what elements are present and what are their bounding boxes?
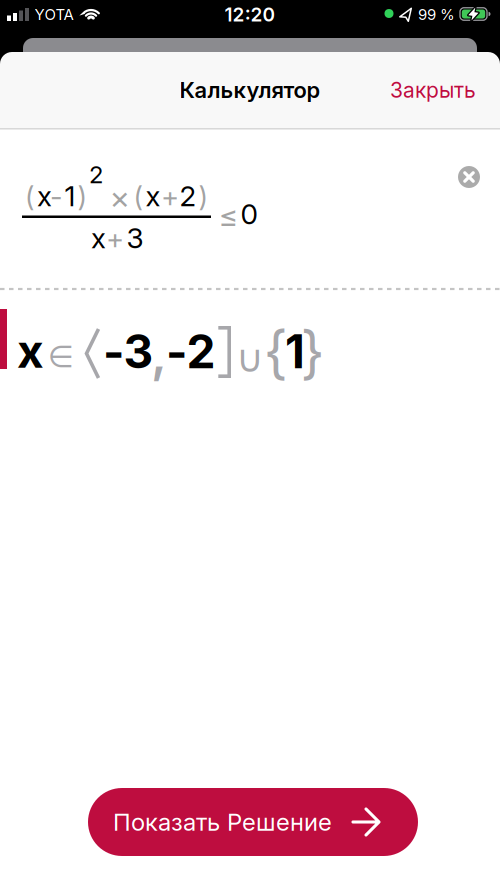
staticText: - <box>103 324 125 380</box>
staticText: 2 <box>179 179 196 213</box>
staticText: } <box>300 317 324 386</box>
button[interactable]: Закрыть <box>390 77 476 103</box>
staticText: { <box>263 317 287 386</box>
staticText: Калькулятор <box>179 77 320 103</box>
staticText: 99 % <box>418 5 455 23</box>
staticText: - <box>50 179 63 213</box>
staticText: YOTA <box>34 5 73 23</box>
staticText: ) <box>77 179 86 213</box>
staticText: ∈ <box>47 339 73 374</box>
staticText: 2 <box>186 324 215 379</box>
staticText: 0 <box>240 197 257 231</box>
staticText: + <box>161 180 179 214</box>
staticText: 3 <box>126 221 143 255</box>
staticText: × <box>109 178 130 216</box>
staticText: 1 <box>285 324 305 379</box>
staticText: 12:20 <box>224 3 275 26</box>
staticText: + <box>106 222 124 256</box>
staticText: ( <box>25 179 34 213</box>
staticText: x <box>91 221 106 255</box>
staticText: 3 <box>123 324 153 379</box>
staticText: ∪ <box>236 336 264 381</box>
staticText: 2 <box>89 160 103 189</box>
staticText: x <box>37 179 52 213</box>
staticText: ) <box>198 179 207 213</box>
staticText: 1 <box>64 179 75 213</box>
staticText: x <box>17 323 44 379</box>
staticText: x <box>145 179 160 213</box>
staticText: ( <box>133 179 142 213</box>
button[interactable]: Clear <box>457 165 481 189</box>
staticText: , <box>151 324 167 384</box>
staticText: Показать Решение <box>113 807 332 836</box>
staticText: - <box>166 324 188 380</box>
staticText: ≤ <box>218 198 237 234</box>
staticText: Закрыть <box>390 77 476 103</box>
button[interactable]: Показать Решение <box>88 788 418 856</box>
